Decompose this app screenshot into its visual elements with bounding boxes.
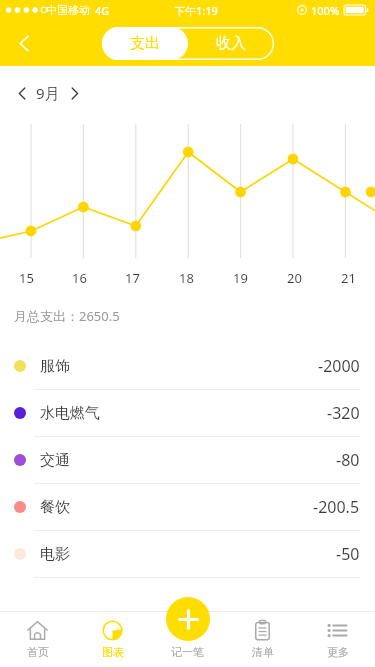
- staticText: 4G: [95, 3, 110, 18]
- staticText: 下午1:19: [174, 3, 218, 18]
- button[interactable]: 交通: [0, 437, 375, 484]
- staticText: 100%: [311, 3, 340, 18]
- staticText: -80: [336, 449, 360, 471]
- staticText: 18: [179, 269, 194, 287]
- staticText: 16: [72, 269, 87, 287]
- button[interactable]: Add record: [166, 597, 210, 641]
- staticText: 月总支出：2650.5: [14, 307, 120, 325]
- staticText: -200.5: [313, 496, 360, 518]
- staticText: 20: [287, 269, 302, 287]
- staticText: -320: [327, 402, 360, 424]
- button[interactable]: 支出: [102, 27, 188, 60]
- staticText: 电影: [40, 545, 70, 564]
- staticText: 服饰: [40, 357, 70, 376]
- button[interactable]: 服饰: [0, 343, 375, 390]
- button[interactable]: 清单: [225, 611, 300, 667]
- button[interactable]: 水电燃气: [0, 390, 375, 437]
- staticText: 21: [341, 269, 356, 287]
- button[interactable]: 餐饮: [0, 484, 375, 531]
- button[interactable]: 电影: [0, 531, 375, 578]
- staticText: -50: [336, 543, 360, 565]
- staticText: -2000: [318, 355, 360, 377]
- button[interactable]: 图表: [75, 611, 150, 667]
- button[interactable]: 更多: [300, 611, 375, 667]
- button[interactable]: Previous month: [8, 79, 36, 107]
- staticText: 餐饮: [40, 498, 70, 517]
- staticText: 图表: [102, 645, 124, 659]
- staticText: 17: [125, 269, 140, 287]
- staticText: 收入: [216, 34, 246, 53]
- staticText: 更多: [327, 645, 349, 659]
- button[interactable]: Next month: [60, 79, 88, 107]
- staticText: 记一笔: [171, 645, 204, 659]
- button[interactable]: Add record: [150, 611, 225, 667]
- staticText: 清单: [252, 645, 274, 659]
- staticText: 首页: [27, 645, 49, 659]
- staticText: 水电燃气: [40, 404, 100, 423]
- button[interactable]: Back: [2, 21, 46, 65]
- staticText: 19: [233, 269, 248, 287]
- staticText: 9月: [36, 83, 60, 103]
- button[interactable]: 收入: [188, 27, 274, 60]
- button[interactable]: 首页: [0, 611, 75, 667]
- staticText: 中国移动: [46, 3, 90, 17]
- staticText: 支出: [130, 34, 160, 53]
- staticText: 交通: [40, 451, 70, 470]
- staticText: 15: [19, 269, 34, 287]
